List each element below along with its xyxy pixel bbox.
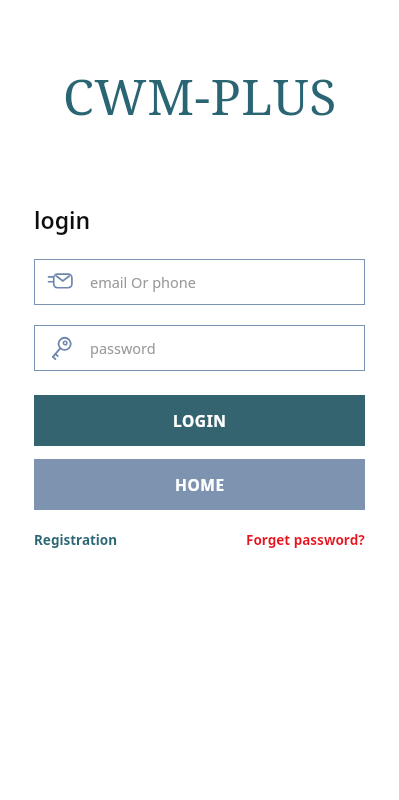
staticText: login bbox=[34, 204, 91, 235]
button[interactable]: LOGIN bbox=[34, 395, 365, 446]
staticText: email Or phone bbox=[90, 272, 196, 292]
button[interactable]: Password bbox=[34, 325, 365, 371]
button[interactable]: Forget password? bbox=[246, 527, 365, 553]
staticText: HOME bbox=[175, 474, 225, 495]
button[interactable]: Email or phone bbox=[34, 259, 365, 305]
staticText: Registration bbox=[34, 531, 118, 549]
staticText: Forget password? bbox=[246, 531, 365, 549]
staticText: LOGIN bbox=[173, 410, 227, 431]
button[interactable]: HOME bbox=[34, 459, 365, 510]
button[interactable]: Registration bbox=[34, 527, 118, 553]
staticText: password bbox=[90, 338, 156, 358]
staticText: CWM-PLUS bbox=[63, 62, 337, 130]
